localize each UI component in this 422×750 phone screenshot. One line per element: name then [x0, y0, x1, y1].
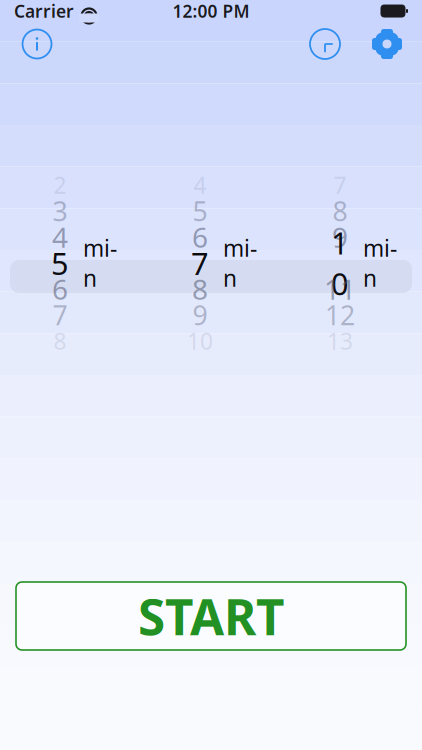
- button[interactable]: Settings: [364, 24, 410, 64]
- staticText: Carrier: [14, 0, 74, 22]
- button[interactable]: History: [302, 24, 348, 64]
- staticText: min: [363, 233, 397, 293]
- staticText: 5: [51, 243, 69, 283]
- staticText: 4: [193, 170, 206, 200]
- staticText: 8: [192, 270, 208, 308]
- staticText: 9: [332, 218, 348, 256]
- staticText: 10: [187, 326, 213, 356]
- button[interactable]: Info: [14, 24, 60, 64]
- staticText: 7: [52, 297, 67, 333]
- staticText: 11: [324, 270, 356, 308]
- staticText: 13: [327, 326, 353, 356]
- staticText: 2: [53, 170, 66, 200]
- staticText: 3: [52, 193, 67, 229]
- staticText: 12: [325, 297, 355, 333]
- staticText: 5: [192, 193, 207, 229]
- staticText: 10: [331, 222, 349, 304]
- staticText: 6: [52, 270, 68, 308]
- staticText: 8: [332, 193, 347, 229]
- staticText: 7: [191, 243, 209, 283]
- staticText: 4: [52, 218, 68, 256]
- staticText: 9: [192, 297, 207, 333]
- staticText: START: [138, 583, 284, 649]
- button[interactable]: START: [16, 582, 406, 650]
- staticText: 7: [333, 170, 346, 200]
- staticText: 8: [53, 326, 66, 356]
- staticText: 6: [192, 218, 208, 256]
- staticText: min: [83, 233, 117, 293]
- staticText: 12:00 PM: [172, 0, 249, 22]
- staticText: min: [223, 233, 257, 293]
